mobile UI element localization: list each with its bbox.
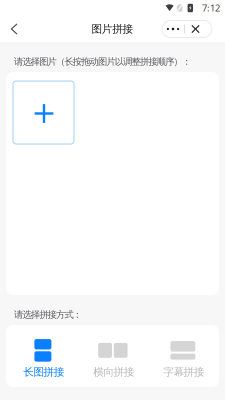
staticText: 请选择图片（长按拖动图片以调整拼接顺序）： [14,56,191,67]
button[interactable]: Close [185,20,206,37]
staticText: 请选择拼接方式： [14,309,82,320]
staticText: 长图拼接 [23,365,65,378]
button[interactable]: Back [3,16,25,42]
button[interactable]: Add photo [13,81,74,144]
button[interactable]: 横向拼接 [79,337,149,378]
staticText: 字幕拼接 [163,365,205,378]
staticText: 图片拼接 [92,22,133,35]
staticText: 横向拼接 [93,365,135,378]
button[interactable]: 字幕拼接 [149,337,219,378]
button[interactable]: More [162,20,184,37]
staticText: 7:12 [202,2,220,14]
button[interactable]: 长图拼接 [9,337,79,378]
